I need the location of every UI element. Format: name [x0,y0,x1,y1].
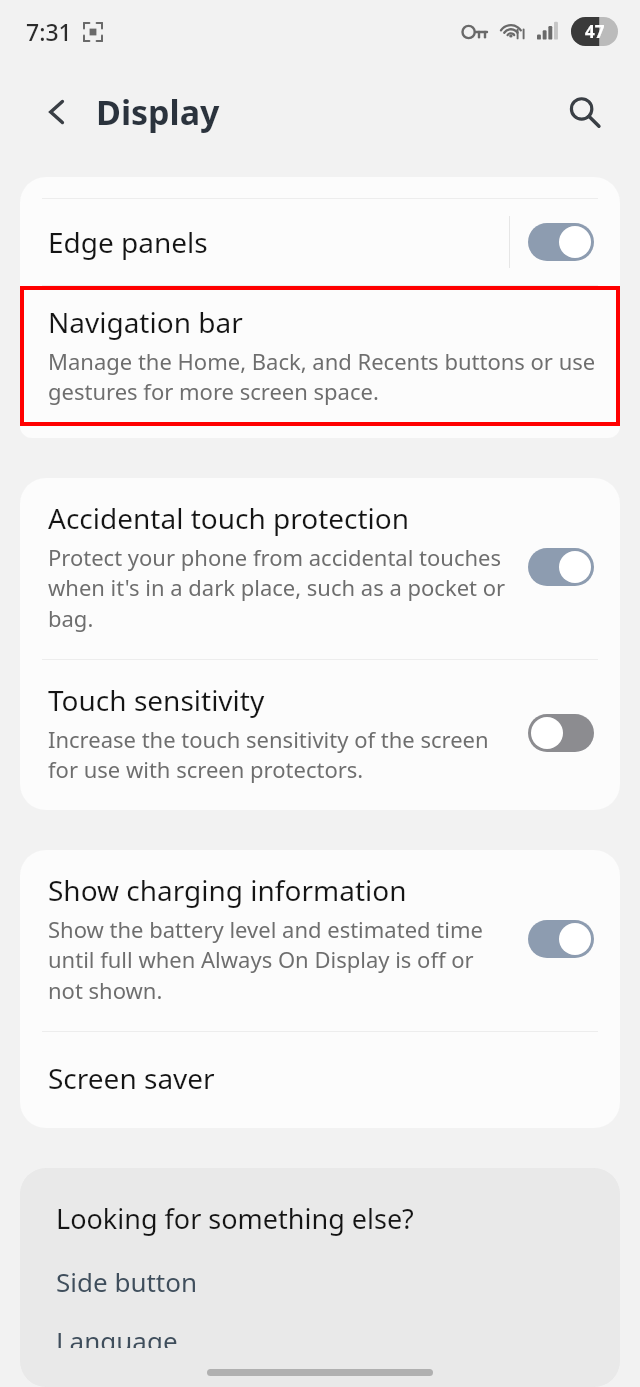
button[interactable]: Screen saver [20,1032,620,1128]
staticText: Language [56,1323,178,1348]
button[interactable]: On [528,920,594,958]
staticText: 7:31 [26,16,72,47]
staticText: Touch sensitivity [48,681,265,719]
button[interactable]: Show charging information [20,850,620,1031]
staticText: Increase the touch sensitivity of the sc… [48,724,514,785]
staticText: 47 [585,20,605,43]
staticText: Show the battery level and estimated tim… [48,914,514,1006]
button[interactable]: Edge panels [20,199,620,285]
staticText: Navigation bar [48,303,243,341]
staticText: Display [96,89,220,135]
button[interactable]: Back [30,85,84,139]
button[interactable]: Language [56,1320,178,1351]
staticText: Screen saver [48,1059,215,1097]
button[interactable]: Accidental touch protection [20,478,620,659]
staticText: Side button [56,1264,198,1299]
button[interactable]: Search [556,84,612,140]
staticText: Edge panels [48,223,509,261]
button[interactable]: On [528,548,594,586]
button[interactable]: Touch sensitivity [20,660,620,810]
staticText: Looking for something else? [56,1200,414,1237]
button[interactable]: Side button [56,1261,198,1302]
button[interactable]: Off [528,714,594,752]
button[interactable]: On [528,223,594,261]
staticText: Show charging information [48,871,407,909]
staticText: Accidental touch protection [48,499,410,537]
staticText: Manage the Home, Back, and Recents butto… [48,346,596,407]
staticText: Protect your phone from accidental touch… [48,542,514,634]
button[interactable]: Navigation bar [20,286,620,426]
